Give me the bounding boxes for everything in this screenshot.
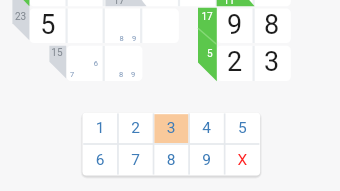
button[interactable]: 7 xyxy=(118,144,154,175)
button[interactable]: 8 xyxy=(154,144,190,175)
button[interactable]: 2 xyxy=(118,113,154,144)
button[interactable]: 1 xyxy=(82,113,118,144)
button[interactable]: Erase xyxy=(226,144,260,175)
button[interactable]: 6 xyxy=(82,144,118,175)
button[interactable]: 4 xyxy=(190,113,226,144)
button[interactable]: 9 xyxy=(190,144,226,175)
button[interactable]: 5 xyxy=(226,113,260,144)
button[interactable]: 3 xyxy=(154,113,190,144)
